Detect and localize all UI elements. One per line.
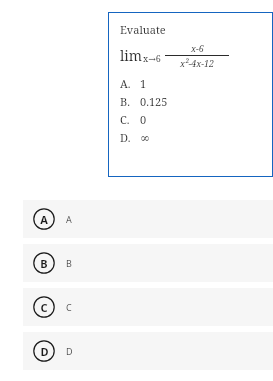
button[interactable]: Evaluate <box>108 12 273 177</box>
button[interactable]: D <box>23 332 273 370</box>
staticText: ∞ <box>140 131 150 145</box>
staticText: lim <box>120 46 143 65</box>
staticText: Evaluate <box>120 22 166 37</box>
button[interactable]: B <box>23 244 273 282</box>
staticText: D. <box>120 130 140 145</box>
staticText: B <box>66 257 72 269</box>
staticText: x−6 <box>191 42 204 54</box>
staticText: C <box>40 300 48 315</box>
staticText: 0 <box>140 112 147 127</box>
staticText: B <box>40 256 48 271</box>
staticText: A <box>40 212 48 227</box>
staticText: A <box>66 213 72 225</box>
button[interactable]: C <box>23 288 273 326</box>
staticText: x→6 <box>143 52 161 64</box>
staticText: 0.125 <box>140 94 168 109</box>
staticText: 1 <box>140 76 147 91</box>
staticText: C. <box>120 112 140 127</box>
button[interactable]: A <box>23 200 273 238</box>
staticText: A. <box>120 76 140 91</box>
staticText: C <box>66 301 72 313</box>
staticText: x²−4x−12 <box>180 57 215 69</box>
staticText: D <box>66 345 73 357</box>
staticText: B. <box>120 94 140 109</box>
staticText: D <box>40 344 49 359</box>
